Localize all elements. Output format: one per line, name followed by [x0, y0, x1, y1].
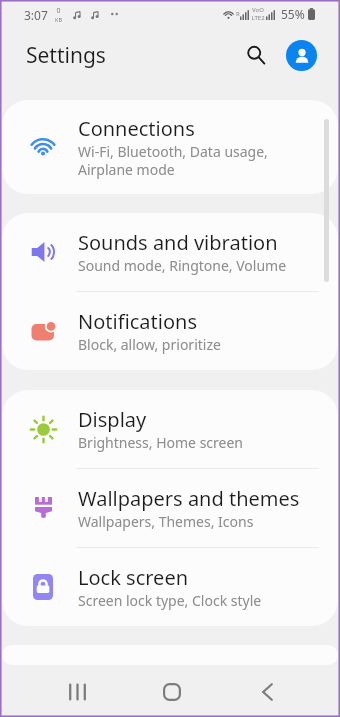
staticText: Sound mode, Ringtone, Volume [78, 256, 287, 275]
button[interactable]: Back [243, 668, 291, 716]
button[interactable]: Notifications [2, 292, 338, 370]
staticText: VoO [252, 6, 264, 14]
staticText: Lock screen [78, 564, 189, 591]
staticText: 55% [281, 6, 305, 22]
staticText: Display [78, 406, 147, 433]
button[interactable]: Account [286, 40, 317, 71]
staticText: 3:07 [24, 7, 48, 23]
staticText: Settings [26, 41, 106, 70]
staticText: Brightness, Home screen [78, 433, 244, 452]
button[interactable]: Wallpapers and themes [2, 469, 338, 547]
staticText: Wi-Fi, Bluetooth, Data usage, Airplane m… [78, 142, 268, 179]
button[interactable]: Display [2, 390, 338, 468]
staticText: Screen lock type, Clock style [78, 591, 262, 610]
button[interactable]: Connections [2, 100, 338, 194]
button[interactable]: Recents [53, 668, 101, 716]
staticText: Sounds and vibration [78, 229, 278, 256]
staticText: LTE2 [251, 14, 265, 22]
staticText: Notifications [78, 308, 197, 335]
staticText: Connections [78, 115, 195, 142]
staticText: Block, allow, prioritize [78, 335, 221, 354]
staticText: Wallpapers, Themes, Icons [78, 512, 254, 531]
staticText: R [236, 10, 240, 18]
staticText: KB [55, 16, 62, 23]
button[interactable]: Search [237, 36, 275, 74]
staticText: Wallpapers and themes [78, 485, 300, 512]
button[interactable]: Sounds and vibration [2, 213, 338, 291]
button[interactable]: Lock screen [2, 548, 338, 626]
staticText: 0 [56, 6, 61, 16]
button[interactable]: Home [148, 668, 196, 716]
